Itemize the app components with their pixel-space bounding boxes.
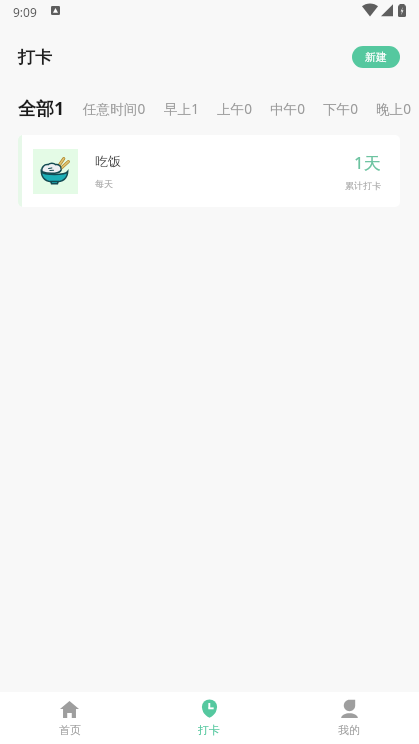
staticText: 晚上0	[376, 99, 411, 118]
button[interactable]: 晚上0	[376, 99, 411, 118]
staticText: 下午0	[323, 99, 358, 118]
button[interactable]: 早上1	[164, 99, 199, 118]
staticText: 首页	[59, 723, 81, 737]
staticText: 打卡	[18, 47, 52, 68]
staticText: 早上1	[164, 99, 199, 118]
staticText: 上午0	[217, 99, 252, 118]
button[interactable]: 新建	[352, 46, 400, 68]
button[interactable]: 全部1	[18, 96, 65, 120]
button[interactable]: 打卡	[139, 692, 279, 744]
button[interactable]: 中午0	[270, 99, 305, 118]
staticText: 累计打卡	[345, 180, 381, 191]
staticText: 9:09	[13, 4, 37, 20]
button[interactable]: 吃饭	[18, 135, 400, 207]
button[interactable]: 我的	[279, 692, 419, 744]
button[interactable]: 首页	[0, 692, 139, 744]
button[interactable]: 下午0	[323, 99, 358, 118]
staticText: 任意时间0	[83, 99, 146, 118]
staticText: 每天	[95, 178, 113, 189]
button[interactable]: 上午0	[217, 99, 252, 118]
staticText: 我的	[338, 723, 360, 737]
staticText: 新建	[365, 50, 387, 64]
staticText: 1天	[354, 151, 381, 174]
staticText: 打卡	[198, 723, 220, 737]
staticText: 中午0	[270, 99, 305, 118]
button[interactable]: 任意时间0	[83, 99, 146, 118]
staticText: 全部1	[18, 96, 65, 120]
staticText: 吃饭	[95, 153, 121, 169]
